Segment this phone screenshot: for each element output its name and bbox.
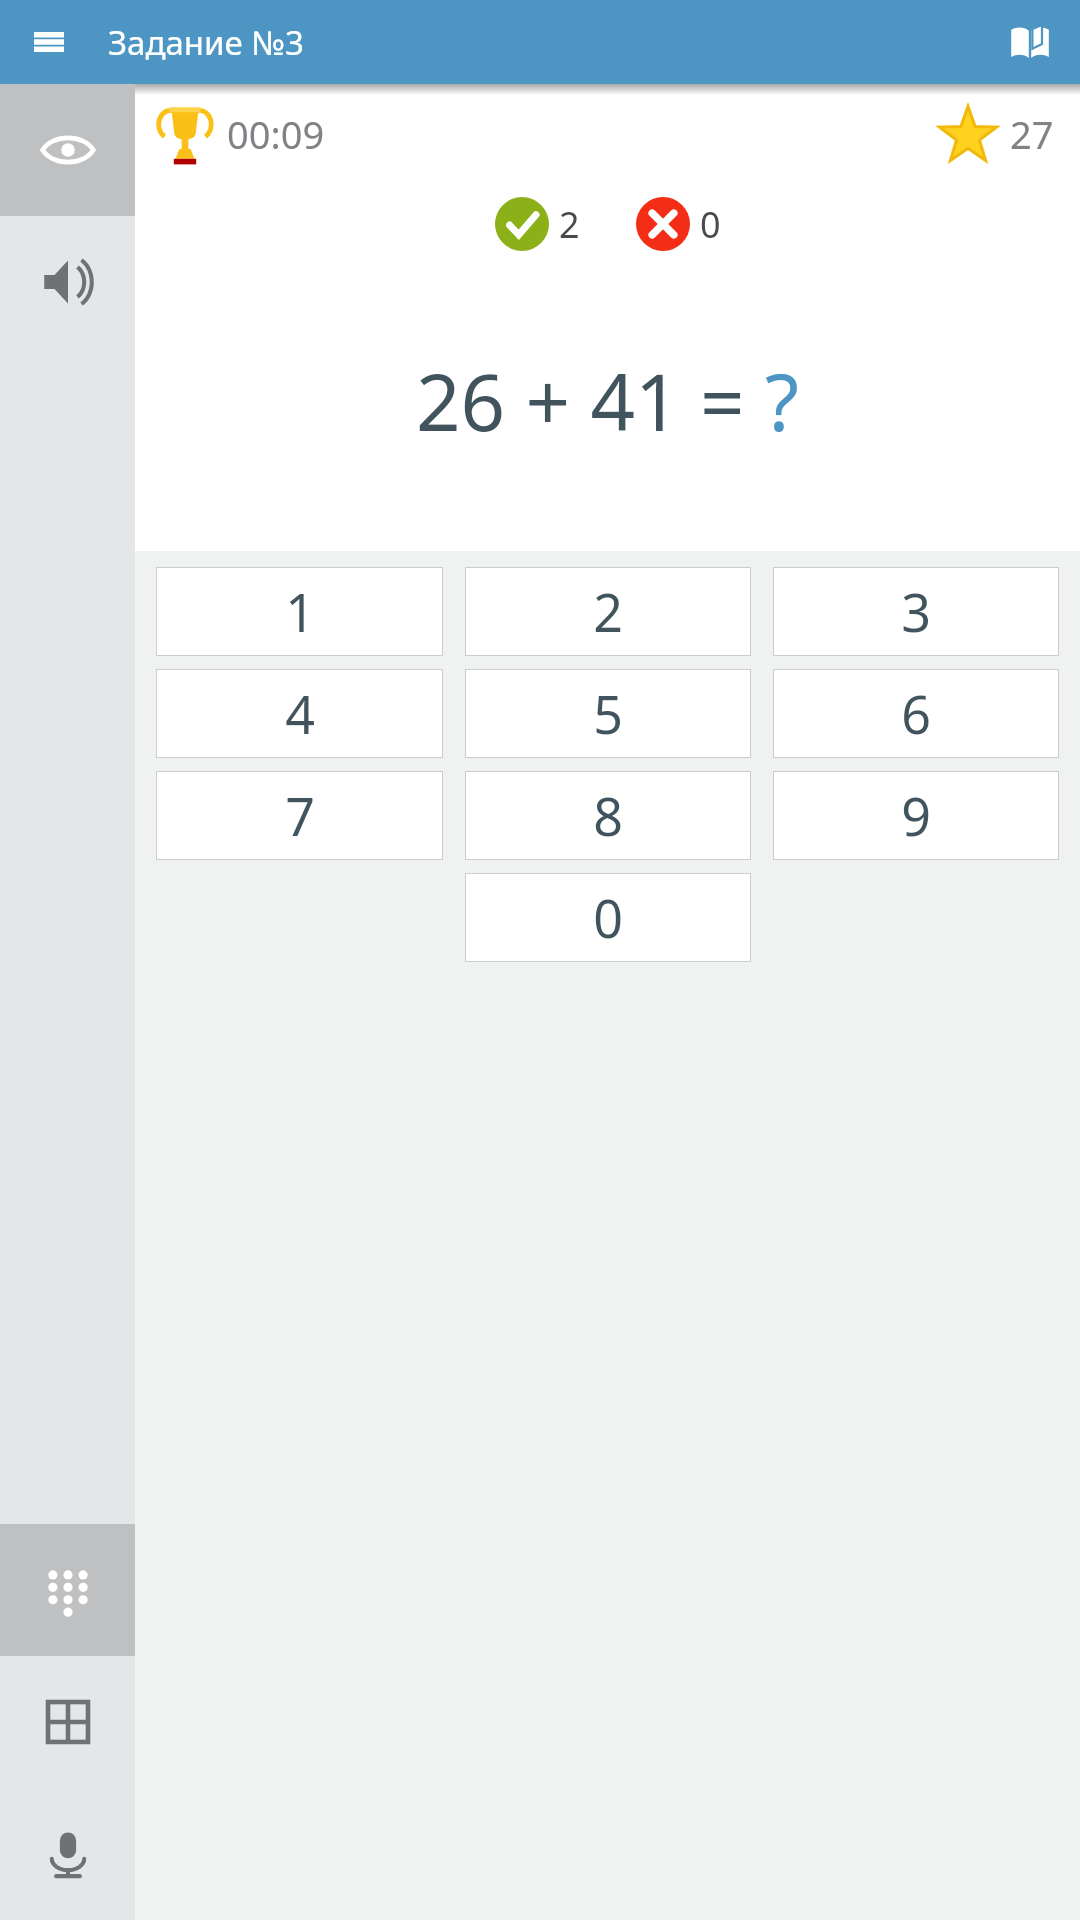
button[interactable]: 8 xyxy=(465,771,751,860)
button[interactable]: 4 xyxy=(156,669,443,758)
staticText: Задание №3 xyxy=(108,20,304,65)
staticText: 3 xyxy=(901,576,931,647)
staticText: 2 xyxy=(559,200,580,249)
staticText: 8 xyxy=(593,780,623,851)
staticText: 4 xyxy=(285,678,315,749)
staticText: 9 xyxy=(901,780,931,851)
button[interactable]: 6 xyxy=(773,669,1059,758)
staticText: ? xyxy=(765,348,799,454)
staticText: 1 xyxy=(285,576,315,647)
button[interactable]: 2 xyxy=(465,567,751,656)
button[interactable]: 1 xyxy=(156,567,443,656)
staticText: 0 xyxy=(593,882,623,953)
button[interactable]: 5 xyxy=(465,669,751,758)
button[interactable]: Options input xyxy=(0,1656,135,1788)
button[interactable]: Dictionary xyxy=(994,6,1066,78)
staticText: 5 xyxy=(593,678,623,749)
button[interactable]: 0 xyxy=(465,873,751,962)
button[interactable]: Keypad input xyxy=(0,1524,135,1656)
staticText: 2 xyxy=(593,576,623,647)
staticText: 27 xyxy=(1010,108,1054,160)
staticText: 26 + 41 = xyxy=(416,348,765,454)
button[interactable]: 7 xyxy=(156,771,443,860)
button[interactable]: Menu xyxy=(14,7,84,77)
staticText: 6 xyxy=(901,678,931,749)
button[interactable]: Show answer xyxy=(0,84,135,216)
button[interactable]: Voice input xyxy=(0,1788,135,1920)
button[interactable]: Sound xyxy=(0,216,135,348)
staticText: 7 xyxy=(285,780,315,851)
staticText: 0 xyxy=(700,200,721,249)
button[interactable]: 9 xyxy=(773,771,1059,860)
staticText: 00:09 xyxy=(227,108,325,160)
button[interactable]: 3 xyxy=(773,567,1059,656)
